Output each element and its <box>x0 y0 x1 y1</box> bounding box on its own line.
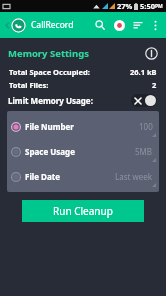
button[interactable]: Info <box>142 44 160 62</box>
button[interactable]: Search <box>91 16 109 34</box>
staticText: File Date <box>25 171 115 182</box>
staticText: 100 <box>139 121 153 132</box>
staticText: Last week <box>115 171 153 182</box>
staticText: Space Usage <box>25 146 135 157</box>
button[interactable]: Run Cleanup <box>22 200 144 222</box>
staticText: Total Files: <box>9 80 152 90</box>
button[interactable]: Record <box>109 15 129 35</box>
button[interactable]: File Date <box>7 164 159 189</box>
staticText: 26.1 kB <box>130 67 157 77</box>
button[interactable]: Limit memory usage toggle <box>131 94 157 107</box>
staticText: Run Cleanup <box>53 204 113 218</box>
staticText: PM <box>155 3 163 10</box>
staticText: 5:50 <box>140 1 155 11</box>
other: App icon <box>11 18 26 33</box>
staticText: 5MB <box>135 146 153 157</box>
button[interactable]: Back <box>3 18 28 33</box>
staticText: 2 <box>152 80 157 90</box>
staticText: File Number <box>25 121 139 132</box>
staticText: Memory Settings <box>8 47 142 60</box>
staticText: CallRecord <box>31 19 91 31</box>
button[interactable]: File Number <box>7 114 159 139</box>
staticText: Limit Memory Usage: <box>8 95 131 106</box>
other: Back <box>5 23 10 28</box>
button[interactable]: Sort <box>129 16 147 34</box>
staticText: 27% <box>117 1 133 11</box>
staticText: Total Space Occupied: <box>9 67 130 77</box>
button[interactable]: More options <box>147 17 163 33</box>
button[interactable]: Space Usage <box>7 139 159 164</box>
